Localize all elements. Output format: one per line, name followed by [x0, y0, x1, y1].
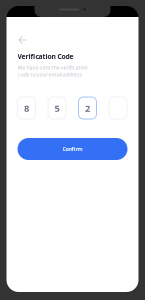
- staticText: Confirm: [62, 145, 82, 153]
- staticText: Verification Code: [17, 52, 73, 61]
- staticText: 8: [24, 102, 29, 114]
- staticText: We have sent the verification code to yo…: [17, 64, 87, 78]
- staticText: 2: [85, 102, 90, 114]
- button[interactable]: Back: [17, 33, 33, 47]
- button[interactable]: Confirm: [17, 138, 127, 160]
- staticText: 5: [54, 102, 59, 114]
